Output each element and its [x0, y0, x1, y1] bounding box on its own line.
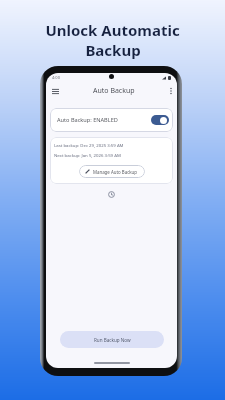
- staticText: Run Backup Now: [94, 337, 131, 343]
- button[interactable]: Run Backup Now: [60, 331, 164, 348]
- button[interactable]: Auto Backup: ENABLED: [50, 108, 173, 132]
- button[interactable]: Open navigation menu: [47, 83, 63, 99]
- staticText: 4:00: [52, 75, 60, 80]
- staticText: Unlock Automatic: [45, 20, 180, 40]
- staticText: Manage Auto Backup: [93, 169, 138, 175]
- staticText: Auto Backup: ENABLED: [57, 116, 118, 124]
- staticText: Backup: [85, 40, 141, 60]
- staticText: Next backup: Jan 5, 2026 3:59 AM: [54, 152, 121, 158]
- staticText: Auto Backup: [93, 86, 135, 96]
- button[interactable]: Manage Auto Backup: [79, 165, 145, 178]
- button[interactable]: More options: [165, 83, 176, 99]
- staticText: Last backup: Dec 29, 2025 3:59 AM: [54, 142, 124, 148]
